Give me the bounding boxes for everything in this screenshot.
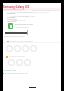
staticText: In stock now bbox=[3, 69, 16, 72]
button[interactable]: Samsung Galaxy S23 bbox=[3, 5, 30, 9]
staticText: benchmark results summary bbox=[32, 9, 58, 12]
button[interactable]: Spreadsheet bbox=[8, 23, 33, 29]
staticText: updated today bbox=[15, 26, 29, 29]
staticText: Samsung Galaxy S23 bbox=[3, 5, 30, 9]
staticText: Memory bbox=[7, 19, 17, 22]
staticText: Chipset bbox=[7, 15, 16, 18]
staticText: Specifications & notes bbox=[3, 8, 25, 11]
staticText: Benchmark sheet bbox=[15, 23, 33, 26]
staticText: Performance figures bbox=[4, 35, 25, 38]
staticText: Colour options available bbox=[10, 40, 33, 43]
staticText: Overview bbox=[7, 18, 18, 21]
staticText: 6.8 in QHD+ panel bbox=[11, 11, 29, 14]
staticText: 12 GB LPDDR5X bbox=[11, 19, 26, 22]
staticText: Snapdragon 8 Gen bbox=[11, 15, 29, 18]
staticText: Display bbox=[7, 11, 16, 14]
staticText: 512 GB UFS 4.0 storage bbox=[27, 11, 49, 14]
staticText: 120 Hz adaptive bbox=[19, 11, 34, 14]
staticText: 4 nm TSMC node bbox=[19, 15, 35, 18]
button[interactable] bbox=[3, 8, 61, 11]
staticText: Storage variants bbox=[9, 55, 25, 58]
staticText: See full specification list bbox=[5, 72, 28, 75]
other: Spreadsheet bbox=[8, 23, 13, 29]
